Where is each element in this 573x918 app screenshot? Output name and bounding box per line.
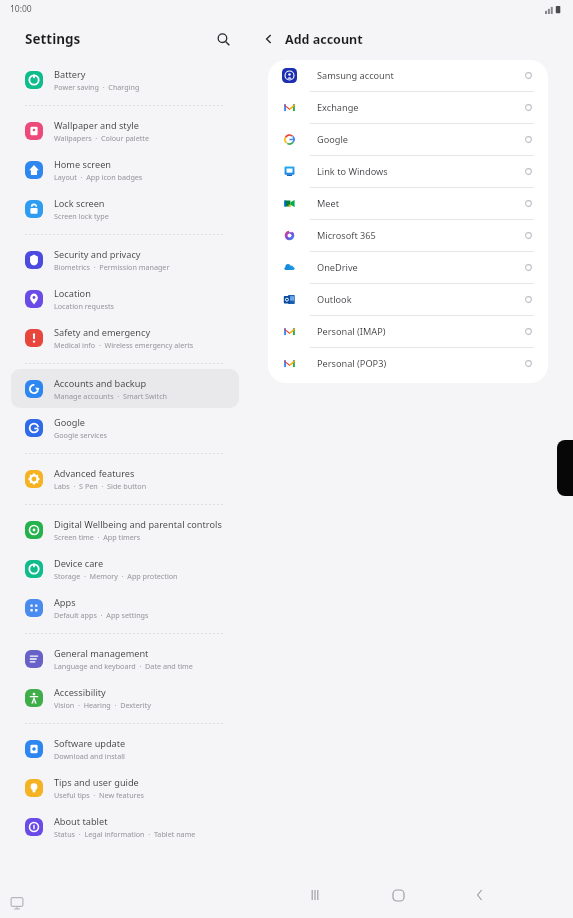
button[interactable]: Battery <box>11 60 239 99</box>
button[interactable]: Search <box>210 26 236 52</box>
staticText: Google services <box>54 430 108 440</box>
staticText: Safety and emergency <box>54 326 151 339</box>
staticText: Settings <box>25 30 81 48</box>
button[interactable]: Device care <box>11 549 239 588</box>
staticText: Screen lock type <box>54 211 109 221</box>
button[interactable]: OneDrive <box>268 252 548 283</box>
button[interactable]: Location <box>11 279 239 318</box>
staticText: Biometrics · Permission manager <box>54 262 170 272</box>
staticText: Storage · Memory · App protection <box>54 571 178 581</box>
staticText: Default apps · App settings <box>54 610 149 620</box>
button[interactable]: Tips and user guide <box>11 768 239 807</box>
staticText: Advanced features <box>54 467 135 480</box>
staticText: Wallpaper and style <box>54 119 139 132</box>
staticText: Accounts and backup <box>54 377 147 390</box>
other: Display mode <box>10 896 24 910</box>
staticText: Labs · S Pen · Side button <box>54 481 147 491</box>
staticText: Manage accounts · Smart Switch <box>54 391 168 401</box>
button[interactable]: General management <box>11 639 239 678</box>
button[interactable]: Back <box>463 878 497 912</box>
staticText: Screen time · App timers <box>54 532 141 542</box>
staticText: Device care <box>54 557 104 570</box>
button[interactable]: Microsoft 365 <box>268 220 548 251</box>
staticText: Language and keyboard · Date and time <box>54 661 193 671</box>
staticText: Download and install <box>54 751 125 761</box>
button[interactable]: About tablet <box>11 807 239 846</box>
staticText: About tablet <box>54 815 108 828</box>
staticText: Microsoft 365 <box>317 229 376 242</box>
button[interactable]: Lock screen <box>11 189 239 228</box>
staticText: 10:00 <box>10 3 32 15</box>
staticText: Wallpapers · Colour palette <box>54 133 149 143</box>
button[interactable]: Software update <box>11 729 239 768</box>
button[interactable]: Accounts and backup <box>11 369 239 408</box>
staticText: Vision · Hearing · Dexterity <box>54 700 151 710</box>
staticText: Battery <box>54 68 86 81</box>
button[interactable]: Wallpaper and style <box>11 111 239 150</box>
button[interactable]: Home <box>381 878 415 912</box>
staticText: Software update <box>54 737 126 750</box>
staticText: Digital Wellbeing and parental controls <box>54 518 222 531</box>
staticText: Link to Windows <box>317 165 388 178</box>
staticText: Add account <box>285 31 363 48</box>
staticText: Home screen <box>54 158 111 171</box>
staticText: OneDrive <box>317 261 358 274</box>
staticText: Personal (IMAP) <box>317 325 386 338</box>
staticText: Power saving · Charging <box>54 82 140 92</box>
staticText: Status · Legal information · Tablet name <box>54 829 196 839</box>
staticText: Medical info · Wireless emergency alerts <box>54 340 194 350</box>
staticText: Accessibility <box>54 686 106 699</box>
button[interactable]: Safety and emergency <box>11 318 239 357</box>
button[interactable]: Samsung account <box>268 60 548 91</box>
button[interactable]: Apps <box>11 588 239 627</box>
button[interactable]: Meet <box>268 188 548 219</box>
button[interactable]: Edge panel handle <box>557 440 573 496</box>
staticText: Location requests <box>54 301 114 311</box>
staticText: Google <box>54 416 86 429</box>
button[interactable]: Personal (POP3) <box>268 348 548 379</box>
staticText: Google <box>317 133 349 146</box>
button[interactable]: Home screen <box>11 150 239 189</box>
button[interactable]: Recents <box>298 878 332 912</box>
button[interactable]: Outlook <box>268 284 548 315</box>
button[interactable]: Google <box>11 408 239 447</box>
button[interactable]: Digital Wellbeing and parental controls <box>11 510 239 549</box>
button[interactable]: Personal (IMAP) <box>268 316 548 347</box>
button[interactable]: Security and privacy <box>11 240 239 279</box>
staticText: Layout · App icon badges <box>54 172 143 182</box>
staticText: Personal (POP3) <box>317 357 387 370</box>
button[interactable]: Accessibility <box>11 678 239 717</box>
staticText: Meet <box>317 197 340 210</box>
staticText: Samsung account <box>317 69 394 82</box>
staticText: Lock screen <box>54 197 105 210</box>
button[interactable]: Exchange <box>268 92 548 123</box>
staticText: Useful tips · New features <box>54 790 144 800</box>
button[interactable]: Back <box>256 26 282 52</box>
staticText: General management <box>54 647 149 660</box>
staticText: Outlook <box>317 293 352 306</box>
staticText: Exchange <box>317 101 359 114</box>
button[interactable]: Advanced features <box>11 459 239 498</box>
staticText: Tips and user guide <box>54 776 139 789</box>
staticText: Location <box>54 287 91 300</box>
button[interactable]: Google <box>268 124 548 155</box>
staticText: Security and privacy <box>54 248 141 261</box>
staticText: Apps <box>54 596 76 609</box>
button[interactable]: Link to Windows <box>268 156 548 187</box>
